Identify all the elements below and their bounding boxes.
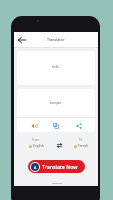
- staticText: From: [32, 138, 40, 142]
- staticText: A: [34, 165, 37, 170]
- button[interactable]: A: [28, 160, 85, 173]
- button[interactable]: Copy: [50, 120, 62, 132]
- staticText: hello: [52, 65, 60, 69]
- staticText: To: [79, 138, 83, 142]
- button[interactable]: hello: [17, 51, 95, 85]
- staticText: English: [33, 144, 44, 148]
- staticText: Translate Now: [42, 163, 78, 170]
- button[interactable]: To: [69, 138, 93, 152]
- button[interactable]: Share: [73, 120, 85, 132]
- button[interactable]: Listen: [28, 120, 40, 132]
- button[interactable]: Back: [16, 34, 28, 46]
- button[interactable]: Swap languages: [53, 139, 65, 151]
- button[interactable]: From: [24, 138, 48, 152]
- staticText: Translator: [47, 37, 65, 42]
- staticText: bonjour: [50, 101, 62, 105]
- staticText: French: [78, 144, 89, 148]
